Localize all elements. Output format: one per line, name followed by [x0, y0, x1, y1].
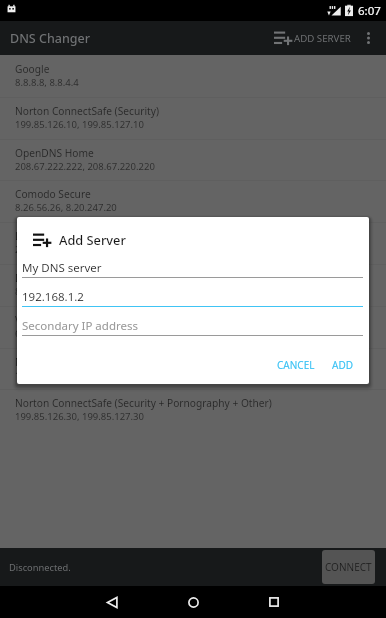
staticText: 199.85.126.10, 199.85.127.10: [15, 118, 144, 131]
button[interactable]: Norton ConnectSafe (Security + Pornograp…: [0, 348, 386, 390]
button[interactable]: Back: [98, 592, 126, 612]
button[interactable]: ADD SERVER: [268, 21, 357, 55]
staticText: ADD: [332, 358, 353, 372]
button[interactable]: Norton ConnectSafe (Security): [0, 97, 386, 139]
staticText: OpenDNS Home: [15, 146, 94, 160]
staticText: DNS Changer: [10, 30, 90, 47]
staticText: Secondary IP address: [22, 318, 138, 334]
staticText: 199.85.126.20, 199.85.127.20: [15, 369, 144, 382]
staticText: 84.200.69.80, 84.200.70.40: [15, 285, 134, 298]
button[interactable]: OpenDNS Home: [0, 139, 386, 181]
button[interactable]: CANCEL: [269, 351, 323, 379]
staticText: 6:07: [358, 3, 381, 19]
button[interactable]: Level3: [0, 222, 386, 264]
button[interactable]: Recents: [260, 592, 288, 612]
button[interactable]: ADD: [323, 351, 363, 379]
staticText: Norton ConnectSafe (Security + Pornograp…: [15, 396, 272, 410]
staticText: ADD SERVER: [294, 32, 351, 45]
staticText: My DNS server: [22, 260, 102, 276]
button[interactable]: Norton ConnectSafe (Security + Pornograp…: [0, 389, 386, 431]
staticText: Norton ConnectSafe (Security): [15, 104, 159, 118]
button[interactable]: CONNECT: [322, 550, 375, 584]
staticText: Level3: [15, 229, 46, 243]
staticText: 8.26.56.26, 8.20.247.20: [15, 201, 117, 214]
button[interactable]: Comodo Secure: [0, 180, 386, 222]
staticText: 208.67.222.222, 208.67.220.220: [15, 160, 155, 173]
button[interactable]: Home: [179, 592, 207, 612]
button[interactable]: More options: [350, 21, 386, 55]
staticText: Verisign: [15, 313, 54, 327]
staticText: 64.6.64.6, 64.6.65.6: [15, 327, 101, 340]
staticText: CONNECT: [325, 560, 372, 574]
staticText: CANCEL: [277, 358, 315, 372]
staticText: 8.8.8.8, 8.8.4.4: [15, 76, 79, 89]
button[interactable]: DNS.WATCH: [0, 264, 386, 306]
staticText: 199.85.126.30, 199.85.127.30: [15, 410, 144, 423]
staticText: DNS.WATCH: [15, 271, 73, 285]
button[interactable]: Verisign: [0, 306, 386, 348]
staticText: Disconnected.: [9, 561, 71, 574]
staticText: Add Server: [59, 231, 126, 248]
staticText: Google: [15, 62, 50, 76]
button[interactable]: Google: [0, 55, 386, 97]
staticText: 192.168.1.2: [22, 289, 84, 305]
staticText: Comodo Secure: [15, 187, 91, 201]
staticText: Norton ConnectSafe (Security + Pornograp…: [15, 355, 233, 369]
staticText: 209.244.0.3, 209.244.0.4: [15, 243, 123, 256]
